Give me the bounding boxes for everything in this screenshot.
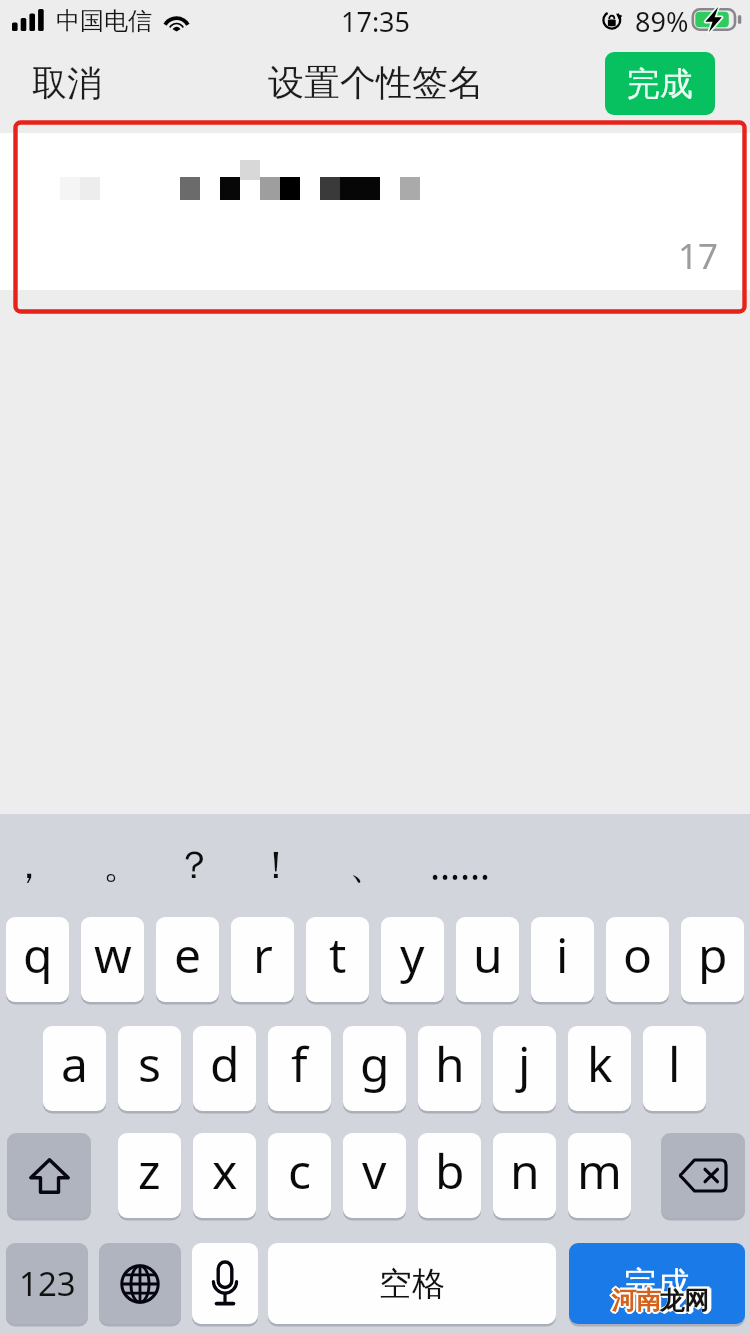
- staticText: t: [329, 922, 347, 987]
- staticText: m: [577, 1138, 622, 1203]
- staticText: j: [518, 1031, 531, 1096]
- staticText: 。: [103, 841, 141, 889]
- staticText: 完成: [627, 63, 693, 105]
- button[interactable]: 完成: [605, 52, 715, 115]
- staticText: x: [212, 1138, 238, 1203]
- button[interactable]: k: [568, 1026, 631, 1111]
- button[interactable]: c: [268, 1133, 331, 1218]
- staticText: 17: [678, 232, 719, 280]
- staticText: 设置个性签名: [268, 60, 484, 105]
- staticText: 中国电信: [56, 6, 152, 36]
- staticText: y: [400, 922, 425, 987]
- button[interactable]: r: [231, 917, 294, 1002]
- staticText: 河南龙网: [613, 1285, 713, 1316]
- staticText: u: [473, 922, 503, 987]
- button[interactable]: 、: [331, 830, 405, 900]
- staticText: z: [138, 1138, 161, 1203]
- staticText: 、: [349, 841, 387, 889]
- staticText: i: [556, 922, 569, 987]
- button[interactable]: ？: [157, 830, 231, 900]
- button[interactable]: e: [156, 917, 219, 1002]
- staticText: g: [360, 1031, 390, 1096]
- button[interactable]: h: [418, 1026, 481, 1111]
- staticText: v: [362, 1138, 387, 1203]
- button[interactable]: q: [6, 917, 69, 1002]
- staticText: 河南龙网: [612, 1284, 712, 1315]
- staticText: 89%: [635, 3, 689, 40]
- button[interactable]: 完成: [569, 1243, 745, 1324]
- staticText: 河南龙网: [611, 1283, 711, 1314]
- button[interactable]: ，: [0, 830, 66, 900]
- button[interactable]: a: [43, 1026, 106, 1111]
- staticText: r: [253, 922, 273, 987]
- staticText: 河南龙网: [609, 1285, 709, 1316]
- staticText: 龙网: [659, 1285, 709, 1316]
- button[interactable]: x: [193, 1133, 256, 1218]
- staticText: 河南龙网: [611, 1287, 711, 1318]
- button[interactable]: y: [381, 917, 444, 1002]
- button[interactable]: 空格: [268, 1243, 556, 1324]
- staticText: 空格: [379, 1263, 445, 1305]
- staticText: 河南龙网: [610, 1286, 710, 1317]
- staticText: ……: [430, 839, 491, 891]
- staticText: 河南龙网: [612, 1286, 712, 1317]
- staticText: d: [210, 1031, 240, 1096]
- staticText: c: [288, 1138, 312, 1203]
- button[interactable]: t: [306, 917, 369, 1002]
- button[interactable]: 取消: [22, 55, 112, 111]
- staticText: k: [587, 1031, 613, 1096]
- button[interactable]: Shift: [7, 1133, 91, 1218]
- button[interactable]: 17: [0, 133, 750, 290]
- staticText: 123: [19, 1261, 76, 1306]
- staticText: n: [510, 1138, 540, 1203]
- button[interactable]: f: [268, 1026, 331, 1111]
- button[interactable]: g: [343, 1026, 406, 1111]
- staticText: 河南龙网: [610, 1284, 710, 1315]
- staticText: f: [291, 1031, 308, 1096]
- button[interactable]: w: [81, 917, 144, 1002]
- button[interactable]: u: [456, 917, 519, 1002]
- staticText: 取消: [32, 61, 102, 105]
- staticText: e: [174, 922, 202, 987]
- staticText: w: [94, 922, 132, 987]
- staticText: ！: [257, 841, 295, 889]
- button[interactable]: ！: [239, 830, 313, 900]
- button[interactable]: 。: [85, 830, 159, 900]
- staticText: a: [61, 1031, 88, 1096]
- staticText: l: [668, 1031, 681, 1096]
- staticText: o: [623, 922, 653, 987]
- button[interactable]: b: [418, 1133, 481, 1218]
- button[interactable]: j: [493, 1026, 556, 1111]
- staticText: 河南: [611, 1285, 661, 1316]
- button[interactable]: m: [568, 1133, 631, 1218]
- button[interactable]: o: [606, 917, 669, 1002]
- staticText: b: [435, 1138, 465, 1203]
- staticText: q: [23, 922, 53, 987]
- button[interactable]: i: [531, 917, 594, 1002]
- button[interactable]: Voice input: [192, 1243, 258, 1324]
- staticText: p: [698, 922, 728, 987]
- staticText: 17:35: [341, 3, 411, 40]
- button[interactable]: p: [681, 917, 744, 1002]
- button[interactable]: Switch keyboard: [99, 1243, 181, 1324]
- button[interactable]: s: [118, 1026, 181, 1111]
- button[interactable]: n: [493, 1133, 556, 1218]
- button[interactable]: 123: [6, 1243, 88, 1324]
- button[interactable]: ……: [423, 830, 497, 900]
- button[interactable]: d: [193, 1026, 256, 1111]
- button[interactable]: Delete: [661, 1133, 745, 1218]
- button[interactable]: v: [343, 1133, 406, 1218]
- button[interactable]: l: [643, 1026, 706, 1111]
- staticText: 完成: [624, 1263, 690, 1305]
- staticText: s: [138, 1031, 161, 1096]
- button[interactable]: z: [118, 1133, 181, 1218]
- staticText: h: [435, 1031, 465, 1096]
- staticText: ，: [10, 841, 48, 889]
- staticText: ？: [175, 841, 213, 889]
